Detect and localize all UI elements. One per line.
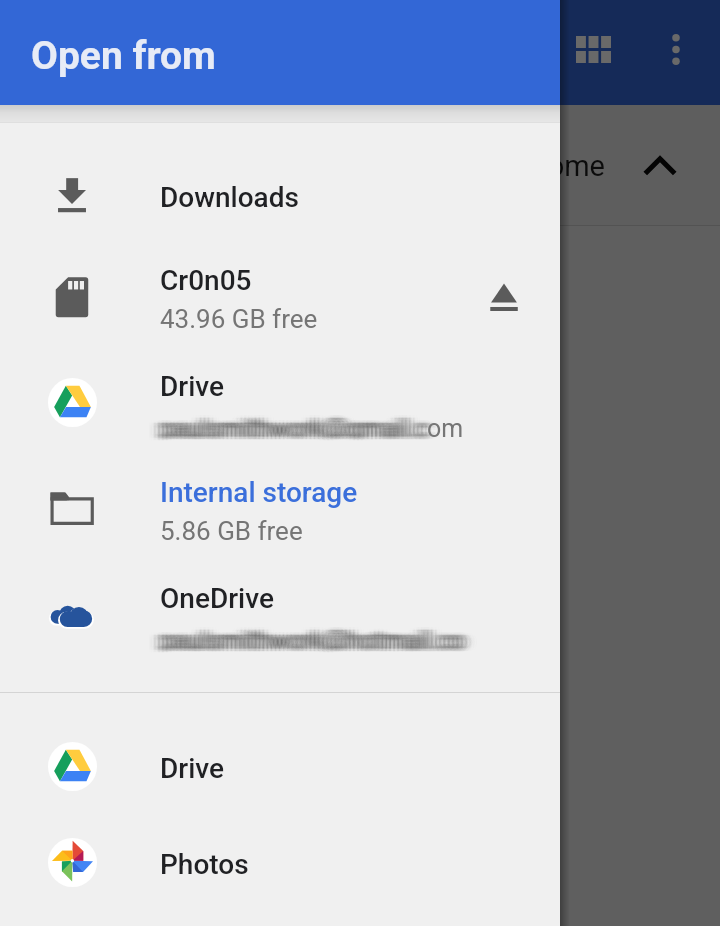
staticText: paulsmithwork@gmail.c <box>160 414 429 438</box>
staticText: paulsmithwork@hotmail.com <box>155 626 465 650</box>
staticText: paulsmithwork@hotmail.com <box>169 626 479 650</box>
staticText: paulsmithwork@hotmail.com <box>163 628 473 652</box>
staticText: paulsmithwork@hotmail.com <box>167 626 477 650</box>
staticText: paulsmithwork@gmail.c <box>147 416 416 440</box>
staticText: paulsmithwork@gmail.c <box>145 413 414 437</box>
staticText: paulsmithwork@gmail.c <box>165 414 434 438</box>
staticText: paulsmithwork@hotmail.com <box>152 629 462 653</box>
button[interactable]: Downloads <box>0 147 560 243</box>
staticText: paulsmithwork@gmail.c <box>168 416 437 440</box>
staticText: paulsmithwork@hotmail.com <box>165 628 475 652</box>
staticText: paulsmithwork@gmail.c <box>151 414 420 438</box>
staticText: paulsmithwork@hotmail.com <box>168 625 478 649</box>
staticText: paulsmithwork@gmail.c <box>168 411 437 435</box>
staticText: paulsmithwork@hotmail.com <box>160 625 470 649</box>
staticText: paulsmithwork@gmail.c <box>169 414 438 438</box>
staticText: paulsmithwork@hotmail.com <box>167 623 477 647</box>
staticText: paulsmithwork@gmail.c <box>157 414 426 438</box>
staticText: paulsmithwork@gmail.c <box>153 414 422 438</box>
button[interactable]: Grid view <box>552 3 635 96</box>
staticText: paulsmithwork@gmail.c <box>171 411 440 435</box>
staticText: paulsmithwork@hotmail.com <box>152 625 462 649</box>
button[interactable]: Internal storage <box>0 461 560 557</box>
staticText: paulsmithwork@hotmail.com <box>156 629 466 653</box>
button[interactable]: More options <box>636 3 716 96</box>
button[interactable]: Close drawer <box>570 0 720 926</box>
staticText: 5.86 GB free <box>160 516 303 546</box>
staticText: paulsmithwork@hotmail.com <box>175 626 485 650</box>
staticText: paulsmithwork@gmail.c <box>157 417 426 441</box>
staticText: paulsmithwork@gmail.c <box>172 416 441 440</box>
staticText: Drive <box>160 370 225 403</box>
staticText: paulsmithwork@gmail.c <box>163 414 432 438</box>
staticText: paulsmithwork@hotmail.com <box>152 628 462 652</box>
staticText: paulsmithwork@gmail.c <box>145 417 414 441</box>
staticText: paulsmithwork@hotmail.com <box>171 628 481 652</box>
button[interactable]: Drive <box>0 718 560 814</box>
staticText: paulsmithwork@hotmail.com <box>147 628 457 652</box>
staticText: paulsmithwork@gmail.c <box>167 413 436 437</box>
button[interactable]: Recent files from Home <box>0 106 720 225</box>
staticText: paulsmithwork@gmail.c <box>175 416 444 440</box>
staticText: paulsmithwork@hotmail.com <box>160 626 470 650</box>
staticText: paulsmithwork@hotmail.com <box>168 629 478 653</box>
staticText: paulsmithwork@gmail.c <box>160 417 429 441</box>
staticText: paulsmithwork@hotmail.com <box>169 629 479 653</box>
staticText: paulsmithwork@gmail.c <box>171 417 440 441</box>
staticText: paulsmithwork@hotmail.com <box>156 626 466 650</box>
staticText: paulsmithwork@gmail.c <box>172 414 441 438</box>
staticText: paulsmithwork@gmail.c <box>164 411 433 435</box>
staticText: paulsmithwork@hotmail.com <box>159 628 469 652</box>
staticText: paulsmithwork@hotmail.com <box>153 623 463 647</box>
staticText: paulsmithwork@gmail.c <box>152 416 421 440</box>
staticText: paulsmithwork@gmail.c <box>161 411 430 435</box>
staticText: paulsmithwork@hotmail.com <box>175 628 485 652</box>
button[interactable]: Cr0n05 <box>0 249 560 345</box>
staticText: paulsmithwork@hotmail.com <box>164 625 474 649</box>
staticText: paulsmithwork@hotmail.com <box>164 628 474 652</box>
staticText: paulsmithwork@hotmail.com <box>149 623 459 647</box>
staticText: paulsmithwork@hotmail.com <box>155 623 465 647</box>
staticText: paulsmithwork@hotmail.com <box>165 625 475 649</box>
staticText: paulsmithwork@hotmail.com <box>161 626 471 650</box>
button[interactable]: Drive <box>0 354 560 450</box>
button[interactable]: Photos <box>0 814 560 910</box>
staticText: paulsmithwork@hotmail.com <box>159 625 469 649</box>
staticText: paulsmithwork@hotmail.com <box>155 629 465 653</box>
staticText: paulsmithwork@gmail.c <box>156 416 425 440</box>
staticText: paulsmithwork@gmail.c <box>152 411 421 435</box>
staticText: Downloads <box>160 181 299 214</box>
staticText: paulsmithwork@hotmail.com <box>171 625 481 649</box>
button[interactable]: OneDrive <box>0 566 560 662</box>
staticText: paulsmithwork@gmail.c <box>151 416 420 440</box>
staticText: paulsmithwork@hotmail.com <box>148 623 458 647</box>
staticText: paulsmithwork@gmail.c <box>172 417 441 441</box>
staticText: paulsmithwork@hotmail.com <box>172 623 482 647</box>
staticText: paulsmithwork@gmail.c <box>168 413 437 437</box>
staticText: paulsmithwork@hotmail.com <box>175 629 485 653</box>
staticText: paulsmithwork@gmail.c <box>160 411 429 435</box>
staticText: paulsmithwork@gmail.c <box>157 416 426 440</box>
staticText: paulsmithwork@gmail.c <box>149 411 418 435</box>
staticText: paulsmithwork@gmail.c <box>163 413 432 437</box>
staticText: paulsmithwork@hotmail.com <box>159 629 469 653</box>
button[interactable]: Eject Cr0n05 <box>472 265 536 329</box>
staticText: paulsmithwork@hotmail.com <box>148 629 458 653</box>
staticText: paulsmithwork@gmail.c <box>169 416 438 440</box>
staticText: paulsmithwork@gmail.c <box>167 411 436 435</box>
staticText: paulsmithwork@hotmail.com <box>161 625 471 649</box>
staticText: paulsmithwork@gmail.c <box>160 416 429 440</box>
staticText: paulsmithwork@gmail.c <box>145 411 414 435</box>
staticText: paulsmithwork@hotmail.com <box>155 625 465 649</box>
staticText: paulsmithwork@gmail.c <box>153 413 422 437</box>
staticText: paulsmithwork@gmail.c <box>175 414 444 438</box>
staticText: paulsmithwork@hotmail.com <box>156 623 466 647</box>
staticText: paulsmithwork@hotmail.com <box>161 623 471 647</box>
staticText: paulsmithwork@gmail.c <box>167 417 436 441</box>
staticText: paulsmithwork@gmail.c <box>145 416 414 440</box>
staticText: paulsmithwork@gmail.c <box>164 413 433 437</box>
staticText: OneDrive <box>160 582 274 615</box>
staticText: paulsmithwork@hotmail.com <box>160 629 470 653</box>
staticText: paulsmithwork@gmail.c <box>167 416 436 440</box>
staticText: paulsmithwork@gmail.c <box>151 417 420 441</box>
